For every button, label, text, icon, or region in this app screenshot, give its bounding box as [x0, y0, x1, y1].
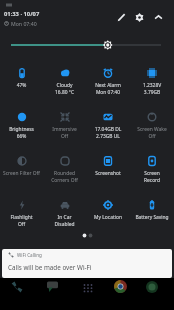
staticText: 01:33 · 10/07	[4, 10, 40, 18]
button[interactable]: 47%	[0, 61, 43, 105]
staticText: 17.04GB DL	[86, 126, 130, 133]
button[interactable]: Screen Filter Off	[0, 149, 43, 193]
button[interactable]: Chrome	[113, 279, 128, 294]
staticText: 66%	[0, 133, 43, 140]
button[interactable]: Settings	[131, 9, 148, 26]
staticText: In Car	[43, 214, 86, 221]
button[interactable]: Collapse	[150, 9, 167, 26]
staticText: Disabled	[43, 221, 86, 228]
staticText: My Location	[86, 214, 130, 221]
staticText: Brightness	[0, 126, 43, 133]
button[interactable]: Brightness slider	[0, 34, 174, 56]
staticText: Screen	[130, 170, 174, 177]
staticText: Calls will be made over Wi-Fi	[8, 263, 92, 272]
button[interactable]: Screen Wake	[130, 105, 174, 149]
staticText: Cloudy	[43, 82, 86, 89]
button[interactable]: Cloudy	[43, 61, 86, 105]
button[interactable]: Screen	[130, 149, 174, 193]
staticText: 16.80 °C	[43, 89, 86, 96]
staticText: Screenshot	[86, 170, 130, 177]
staticText: Battery Saving	[130, 214, 174, 221]
staticText: Flashlight	[0, 214, 43, 221]
button[interactable]: WiFi Calling	[2, 249, 172, 278]
button[interactable]: All apps	[80, 280, 95, 295]
staticText: Record	[130, 177, 174, 184]
staticText: Mon 07:40	[11, 20, 37, 27]
staticText: 1.2328V	[130, 82, 174, 89]
staticText: Corners Off	[43, 177, 86, 184]
button[interactable]: WhatsApp	[144, 279, 159, 294]
staticText: 47%	[0, 82, 43, 89]
button[interactable]: Next Alarm	[86, 61, 130, 105]
staticText: 3.79GB	[130, 89, 174, 96]
staticText: Off	[130, 133, 174, 140]
button[interactable]: Brightness	[0, 105, 43, 149]
staticText: WiFi Calling	[17, 252, 42, 258]
staticText: Rounded	[43, 170, 86, 177]
staticText: 2.73GB UL	[86, 133, 130, 140]
button[interactable]: Rounded	[43, 149, 86, 193]
staticText: Screen Wake	[130, 126, 174, 133]
button[interactable]: Battery Saving	[130, 193, 174, 237]
button[interactable]: 1.2328V	[130, 61, 174, 105]
button[interactable]: Phone	[9, 279, 24, 294]
button[interactable]: My Location	[86, 193, 130, 237]
button[interactable]: Edit tiles	[113, 9, 130, 26]
button[interactable]: Flashlight	[0, 193, 43, 237]
staticText: Screen Filter Off	[0, 170, 43, 177]
staticText: Off	[0, 221, 43, 228]
button[interactable]: Screenshot	[86, 149, 130, 193]
staticText: Mon 07:40	[86, 89, 130, 96]
button[interactable]: Immersive	[43, 105, 86, 149]
button[interactable]: 17.04GB DL	[86, 105, 130, 149]
button[interactable]: In Car	[43, 193, 86, 237]
staticText: Immersive	[43, 126, 86, 133]
staticText: Next Alarm	[86, 82, 130, 89]
button[interactable]: Messages	[44, 278, 60, 294]
staticText: Off	[43, 133, 86, 140]
